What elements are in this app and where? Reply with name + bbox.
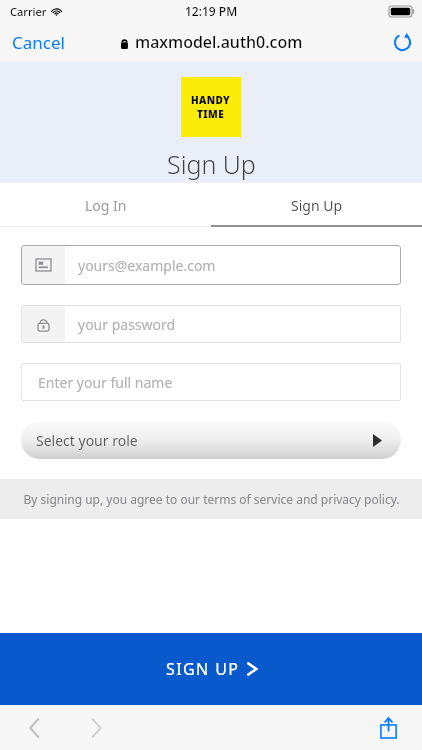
staticText: maxmodel.auth0.com: [135, 31, 303, 53]
staticText: Carrier: [10, 4, 47, 19]
button[interactable]: Select your role: [21, 421, 401, 459]
button[interactable]: Cancel: [0, 25, 77, 60]
staticText: Log In: [85, 196, 127, 215]
button[interactable]: Sign Up: [211, 183, 422, 227]
button[interactable]: your password: [21, 305, 401, 343]
staticText: TIME: [197, 107, 225, 121]
staticText: Cancel: [12, 31, 65, 54]
staticText: By signing up, you agree to our terms of…: [23, 491, 400, 507]
staticText: Enter your full name: [38, 373, 173, 392]
staticText: HANDY: [191, 93, 231, 107]
staticText: Sign Up: [167, 147, 256, 181]
staticText: SIGN UP: [166, 658, 240, 680]
staticText: your password: [78, 315, 176, 334]
staticText: Select your role: [36, 431, 138, 450]
staticText: Sign Up: [291, 196, 343, 215]
staticText: yours@example.com: [78, 256, 216, 275]
button[interactable]: Share: [368, 708, 408, 748]
button[interactable]: Back: [14, 708, 54, 748]
button[interactable]: Forward: [76, 708, 116, 748]
button[interactable]: yours@example.com: [21, 245, 401, 285]
button[interactable]: SIGN UP: [0, 633, 422, 705]
button[interactable]: Enter your full name: [21, 363, 401, 401]
staticText: 12:19 PM: [185, 3, 238, 19]
button[interactable]: Log In: [0, 183, 211, 227]
button[interactable]: Reload: [383, 33, 422, 52]
